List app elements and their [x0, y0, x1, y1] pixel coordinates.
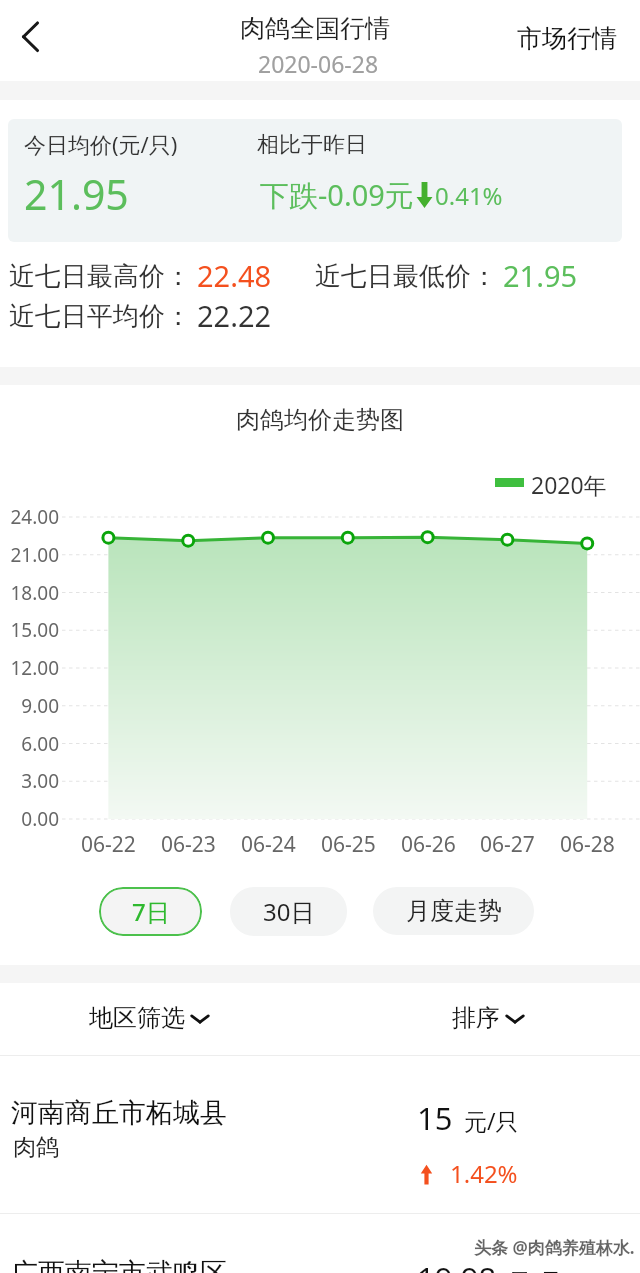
button[interactable]: 排序 — [452, 998, 528, 1038]
staticText: 河南商丘市柘城县 — [11, 1096, 227, 1130]
staticText: 9.00 — [0, 693, 59, 719]
staticText: 月度走势 — [406, 896, 502, 926]
staticText: 19.98 — [417, 1257, 497, 1273]
staticText: 元/只 — [464, 1105, 519, 1136]
button[interactable]: 7日 — [99, 887, 202, 936]
staticText: 广西南宁市武鸣区 — [11, 1256, 227, 1273]
staticText: 近七日最高价： — [9, 260, 191, 293]
staticText: 06-24 — [241, 830, 296, 859]
staticText: 近七日最低价： — [315, 260, 497, 293]
staticText: 肉鸽 — [13, 1133, 59, 1162]
staticText: 7日 — [132, 895, 170, 928]
staticText: 地区筛选 — [89, 1003, 185, 1033]
staticText: 24.00 — [0, 504, 59, 530]
staticText: 18.00 — [0, 580, 59, 606]
button[interactable]: 河南商丘市柘城县 — [0, 1056, 640, 1213]
staticText: 22.22 — [197, 296, 272, 335]
staticText: 排序 — [452, 1003, 500, 1033]
staticText: 06-26 — [401, 830, 456, 859]
staticText: 今日均价(元/只) — [24, 129, 178, 159]
button[interactable]: 地区筛选 — [89, 998, 213, 1038]
button[interactable]: Back — [0, 0, 62, 74]
staticText: 近七日平均价： — [9, 300, 191, 333]
staticText: 相比于昨日 — [257, 131, 367, 159]
staticText: 0.41% — [435, 179, 503, 212]
staticText: 06-23 — [161, 830, 216, 859]
button[interactable]: 广西南宁市武鸣区 — [0, 1216, 640, 1273]
staticText: 21.95 — [24, 166, 129, 222]
staticText: 06-28 — [560, 830, 615, 859]
staticText: 肉鸽均价走势图 — [236, 405, 404, 435]
staticText: 市场行情 — [517, 23, 617, 54]
staticText: 12.00 — [0, 655, 59, 681]
staticText: 06-27 — [480, 830, 535, 859]
staticText: 元/只 — [508, 1265, 563, 1273]
staticText: 6.00 — [0, 731, 59, 757]
staticText: 下跌-0.09元 — [260, 175, 414, 215]
staticText: 肉鸽全国行情 — [240, 13, 390, 44]
staticText: 06-22 — [81, 830, 136, 859]
staticText: 2020年 — [531, 469, 607, 500]
staticText: 06-25 — [321, 830, 376, 859]
staticText: 21.95 — [503, 256, 578, 295]
staticText: 15.00 — [0, 617, 59, 643]
button[interactable]: 30日 — [230, 887, 347, 936]
staticText: 3.00 — [0, 768, 59, 794]
staticText: 21.00 — [0, 542, 59, 568]
staticText: 22.48 — [197, 256, 272, 295]
staticText: 0.00 — [0, 806, 59, 832]
staticText: 1.42% — [450, 1157, 518, 1190]
staticText: 2020-06-28 — [258, 48, 379, 79]
button[interactable]: 市场行情 — [506, 12, 628, 64]
button[interactable]: 月度走势 — [373, 887, 534, 935]
staticText: 30日 — [263, 895, 315, 928]
staticText: 头条 @肉鸽养殖林水. — [474, 1236, 635, 1259]
staticText: 15 — [417, 1097, 453, 1139]
